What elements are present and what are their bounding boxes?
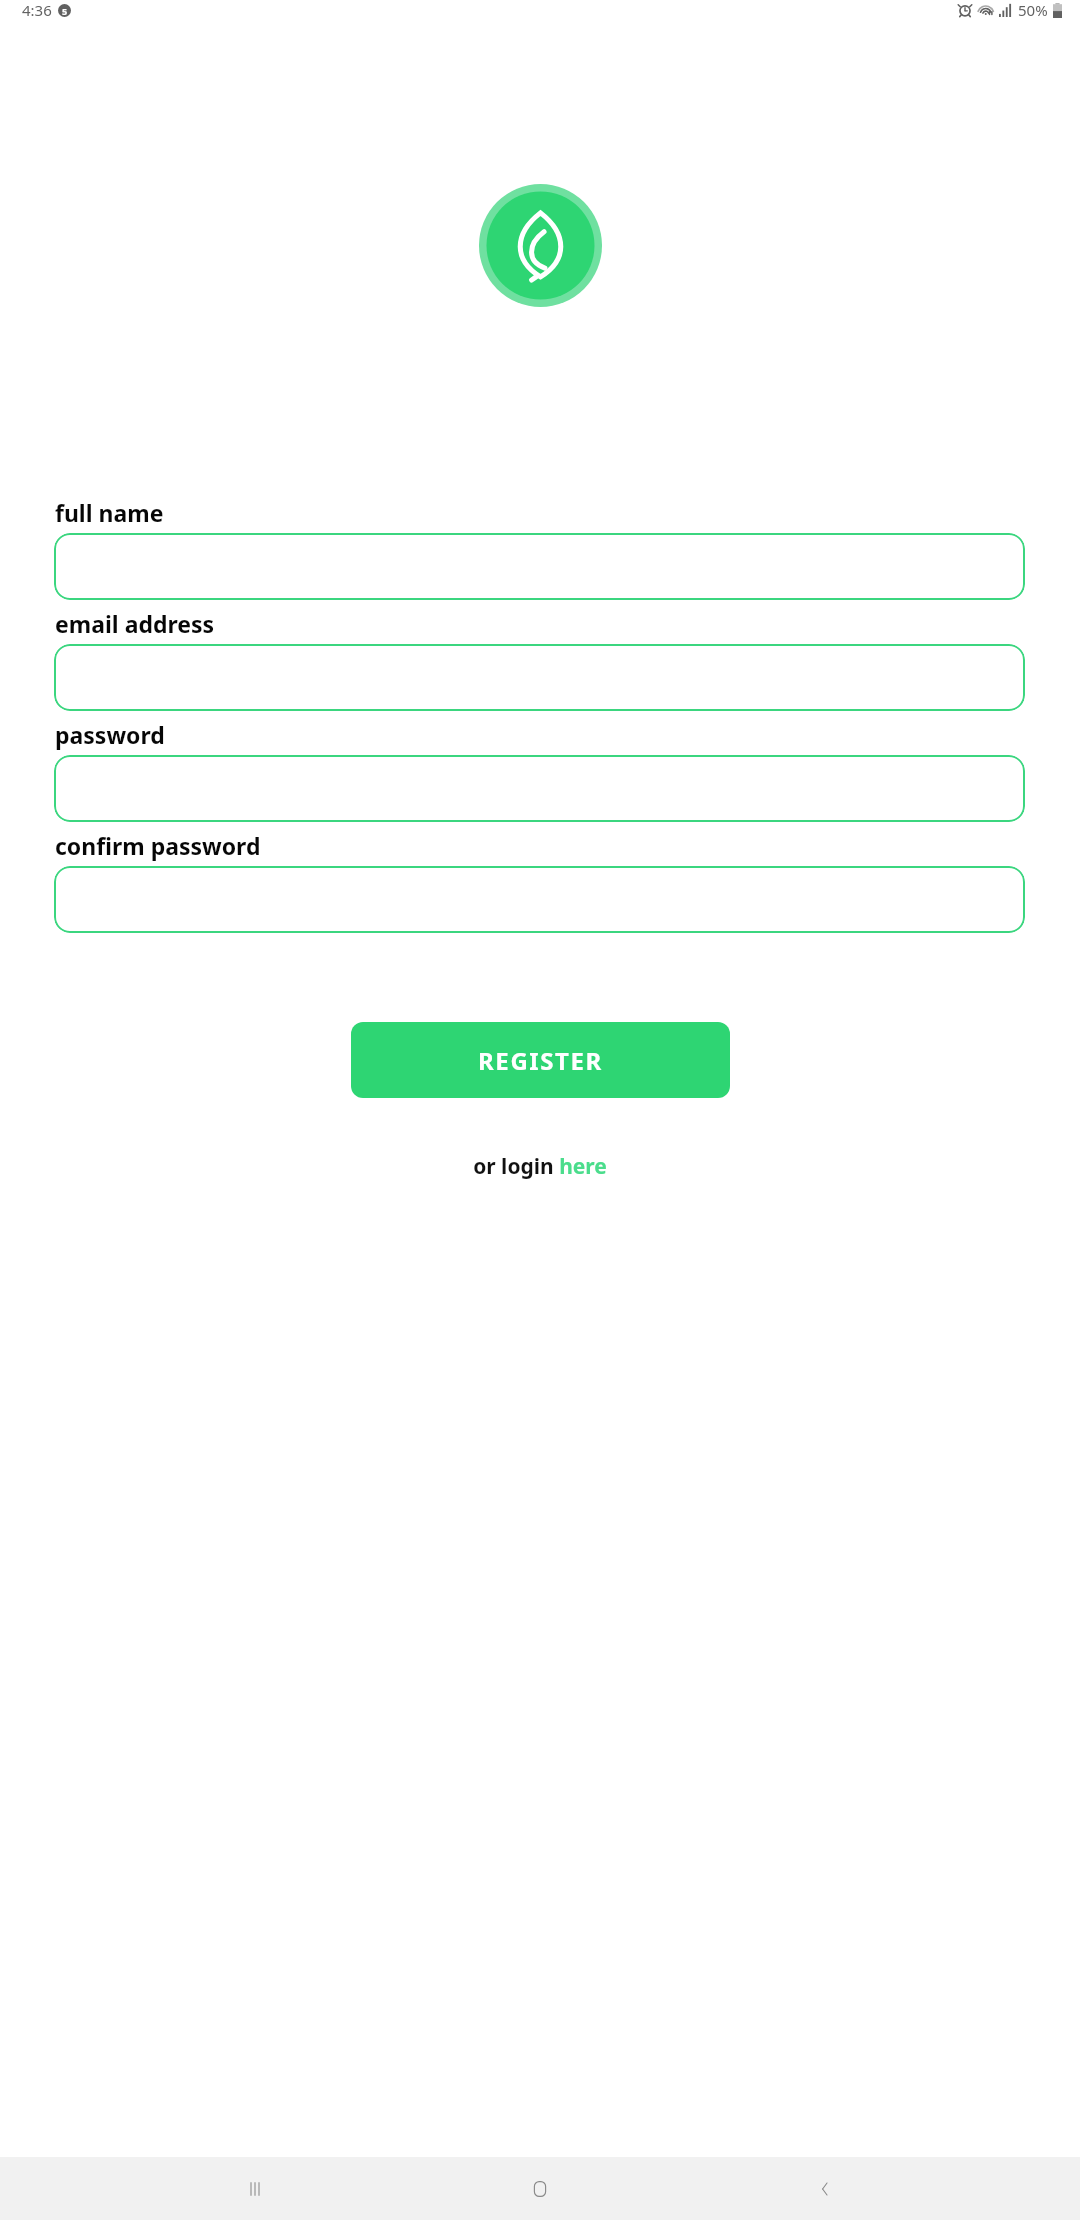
other: App logo [479, 184, 602, 307]
staticText: email address [55, 608, 215, 639]
staticText: full name [55, 497, 164, 528]
button[interactable]: Back [795, 2159, 855, 2219]
staticText: 50% [1018, 0, 1048, 20]
button[interactable] [54, 755, 1025, 822]
button[interactable] [54, 644, 1025, 711]
staticText: REGISTER [478, 1044, 603, 1077]
staticText: or login here [473, 1152, 607, 1181]
button[interactable] [54, 533, 1025, 600]
button[interactable] [54, 866, 1025, 933]
button[interactable]: or login here [461, 1146, 619, 1187]
button[interactable]: REGISTER [351, 1022, 730, 1098]
staticText: confirm password [55, 830, 261, 861]
button[interactable]: Home [510, 2159, 570, 2219]
staticText: 5 [62, 5, 68, 17]
staticText: password [55, 719, 165, 750]
button[interactable]: Recent apps [225, 2159, 285, 2219]
staticText: 4:36 [22, 0, 52, 20]
